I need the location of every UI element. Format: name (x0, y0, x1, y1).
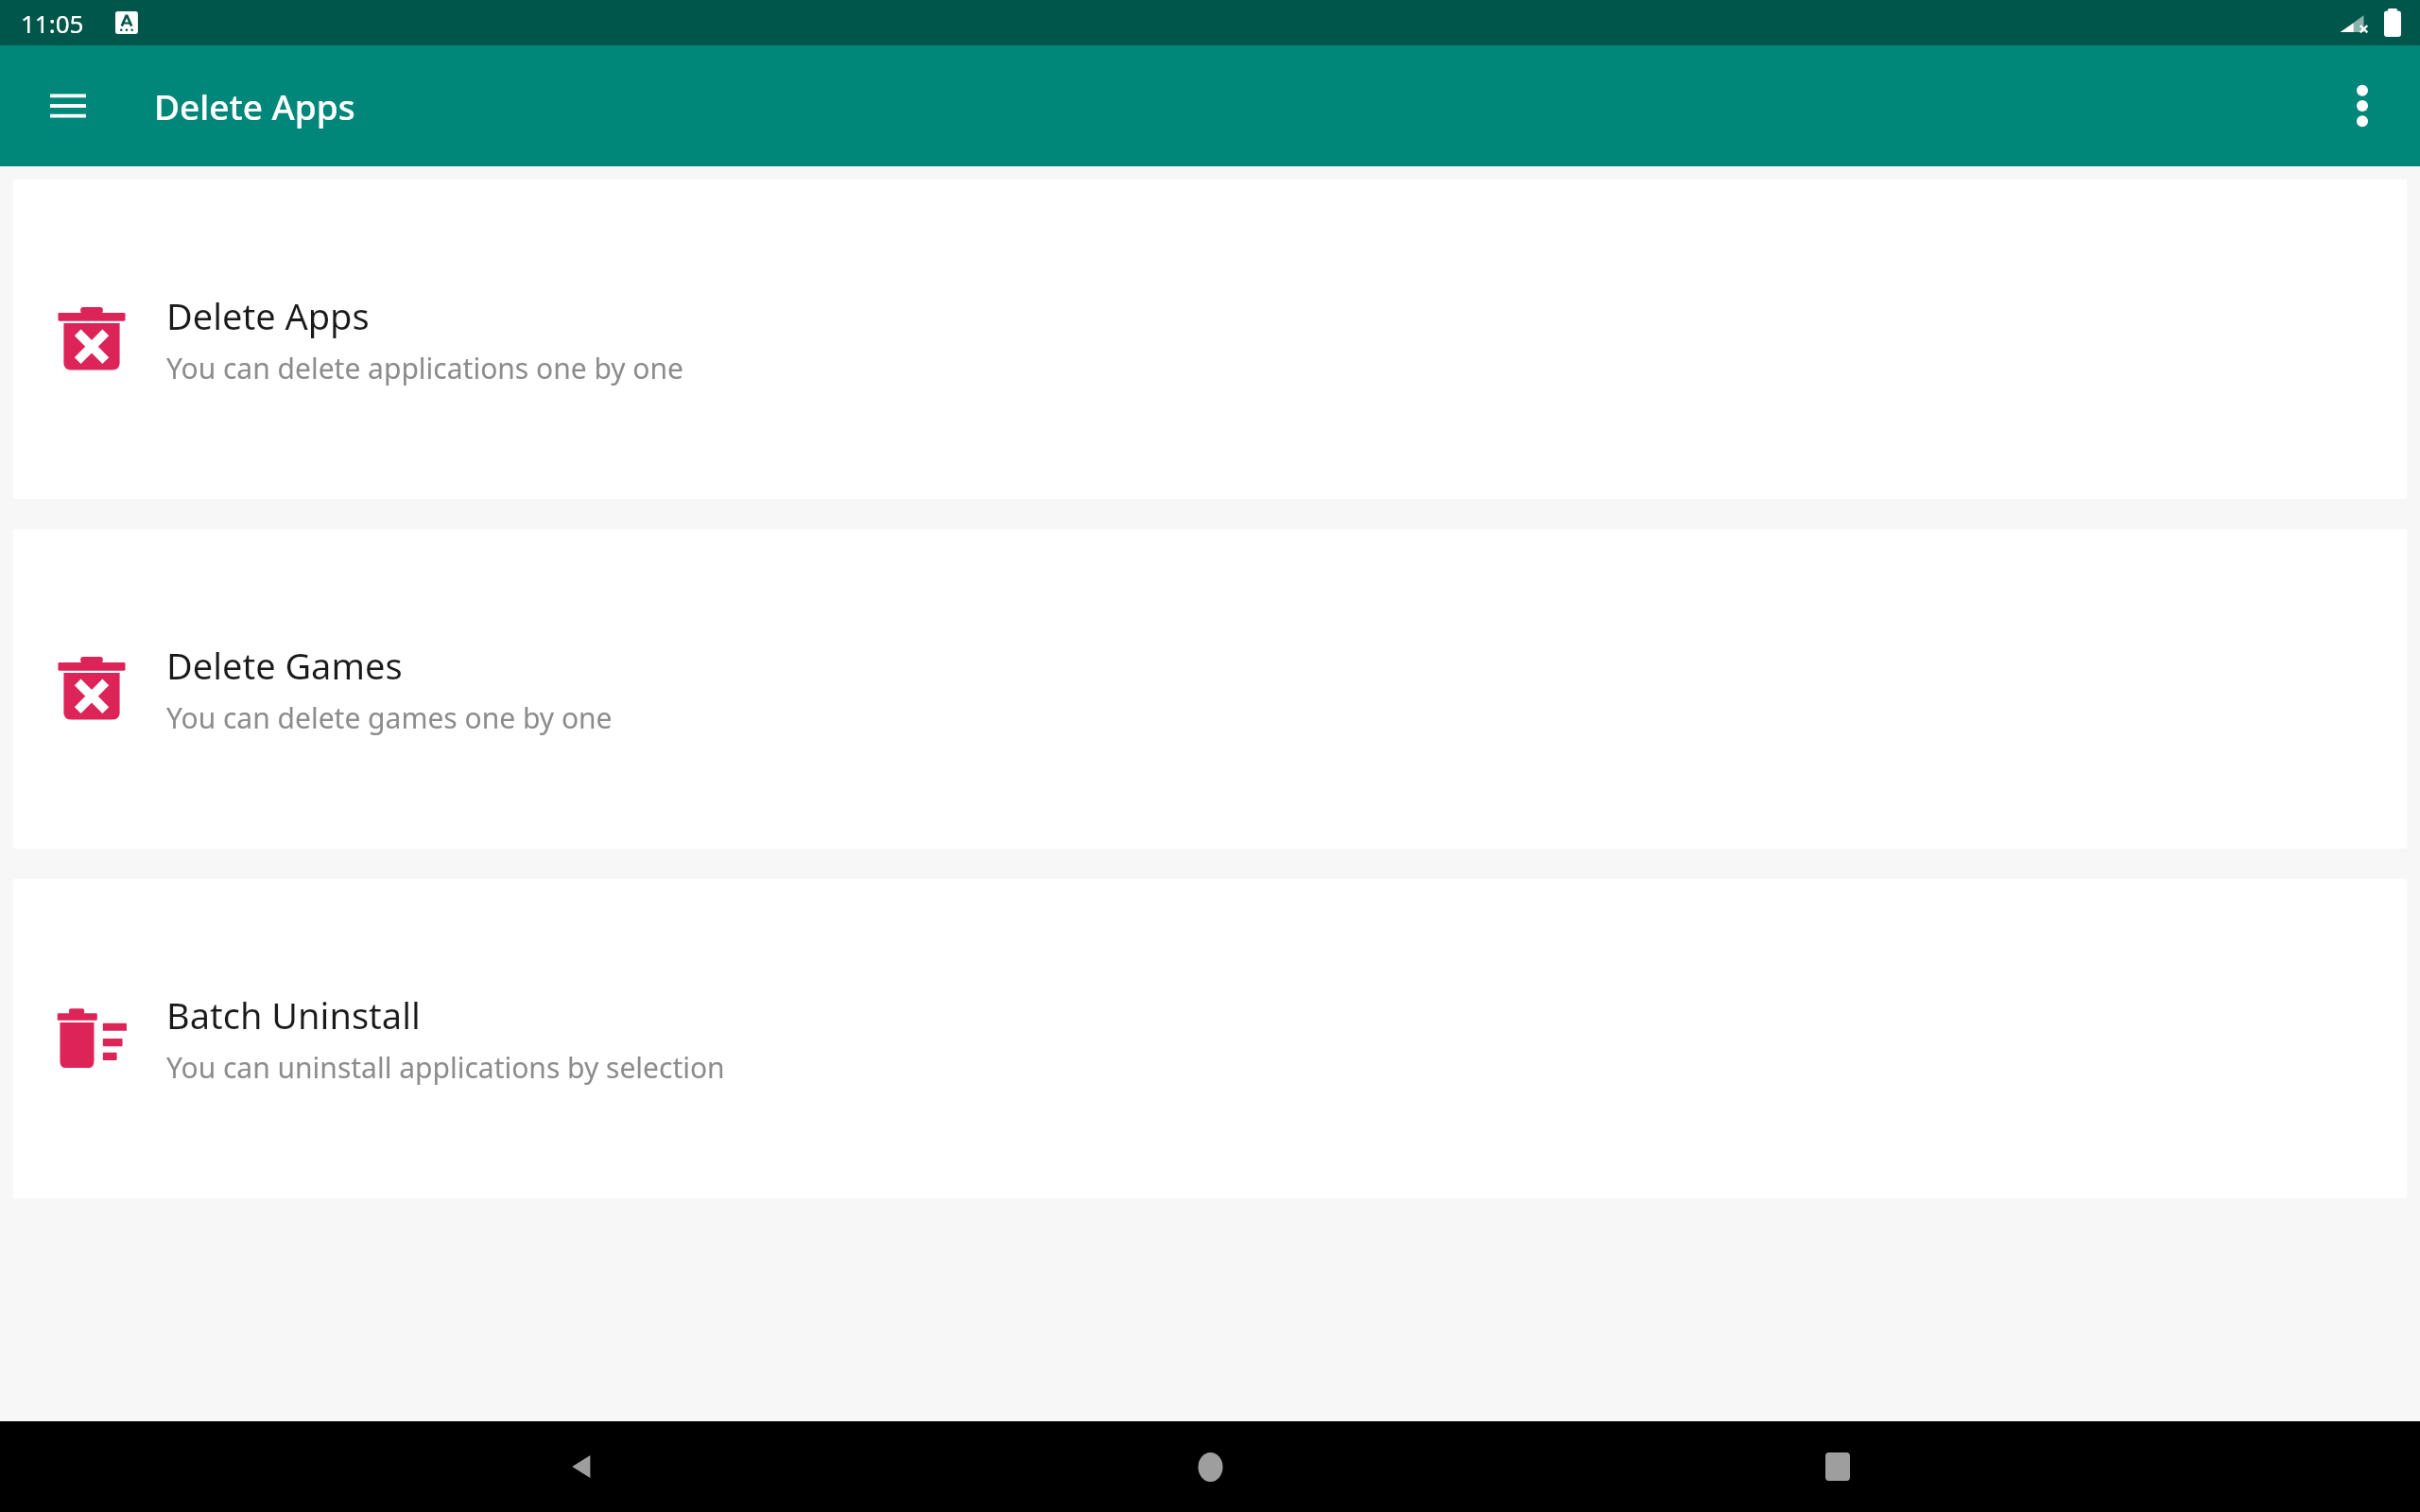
button[interactable]: Batch Uninstall (13, 879, 2407, 1198)
button[interactable]: More options (2333, 77, 2392, 135)
button[interactable]: Delete Apps (13, 180, 2407, 499)
staticText: Batch Uninstall (166, 990, 421, 1039)
button[interactable]: Recent apps (1792, 1421, 1883, 1512)
staticText: You can delete games one by one (166, 698, 613, 737)
staticText: 11:05 (21, 7, 84, 40)
button[interactable]: Delete Games (13, 529, 2407, 849)
button[interactable]: Open navigation menu (40, 77, 96, 134)
staticText: Delete Apps (166, 291, 370, 340)
button[interactable]: Back (537, 1421, 628, 1512)
staticText: Delete Games (166, 641, 403, 690)
staticText: You can delete applications one by one (166, 349, 683, 387)
staticText: You can uninstall applications by select… (166, 1048, 725, 1087)
button[interactable]: Home (1165, 1421, 1255, 1512)
staticText: Delete Apps (154, 82, 355, 129)
